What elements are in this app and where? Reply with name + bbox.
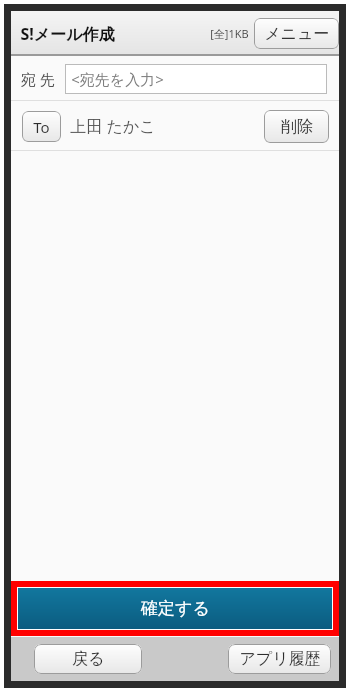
staticText: アプリ履歴 bbox=[239, 649, 321, 669]
staticText: [全]1KB bbox=[210, 26, 249, 41]
staticText: 確定する bbox=[141, 598, 210, 619]
staticText: 削除 bbox=[281, 117, 313, 137]
staticText: <宛先を入力> bbox=[71, 69, 164, 89]
button[interactable]: 削除 bbox=[264, 110, 329, 143]
button[interactable]: 確定する bbox=[18, 588, 332, 629]
staticText: 上田 たかこ bbox=[70, 115, 156, 137]
staticText: S!メール作成 bbox=[20, 23, 115, 45]
button[interactable]: メニュー bbox=[254, 18, 339, 49]
button[interactable]: アプリ履歴 bbox=[228, 644, 331, 674]
staticText: To bbox=[33, 117, 50, 137]
staticText: 宛 先 bbox=[21, 69, 55, 89]
staticText: メニュー bbox=[264, 24, 330, 44]
button[interactable]: 戻る bbox=[34, 644, 142, 674]
button[interactable]: To bbox=[22, 111, 61, 142]
button[interactable]: <宛先を入力> bbox=[65, 64, 327, 94]
staticText: 戻る bbox=[72, 649, 105, 669]
